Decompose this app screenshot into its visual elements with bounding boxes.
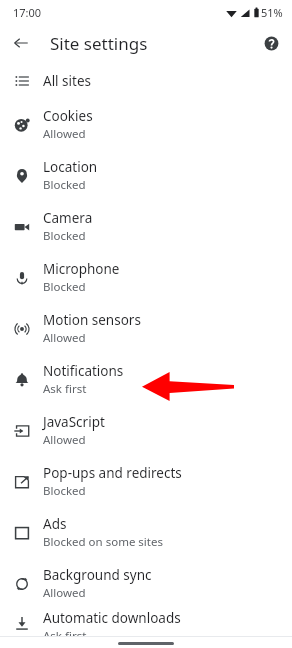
button[interactable]: Location — [0, 150, 292, 201]
button[interactable]: Motion sensors — [0, 303, 292, 354]
staticText: Automatic downloads — [43, 609, 181, 627]
staticText: Site settings — [50, 32, 148, 55]
staticText: Notifications — [43, 362, 124, 380]
staticText: Allowed — [43, 432, 86, 448]
staticText: Blocked — [43, 279, 86, 295]
staticText: Allowed — [43, 585, 86, 601]
staticText: Cookies — [43, 107, 93, 125]
button[interactable]: Back — [7, 29, 35, 57]
button[interactable]: Cookies — [0, 99, 292, 150]
staticText: Motion sensors — [43, 311, 141, 329]
staticText: 17:00 — [13, 5, 42, 20]
staticText: Allowed — [43, 330, 86, 346]
staticText: Ads — [43, 515, 67, 533]
staticText: Blocked — [43, 228, 86, 244]
button[interactable]: Background sync — [0, 558, 292, 609]
button[interactable]: All sites — [0, 62, 292, 99]
staticText: Ask first — [43, 628, 87, 636]
button[interactable]: Notifications — [0, 354, 292, 405]
staticText: Background sync — [43, 566, 152, 584]
staticText: Camera — [43, 209, 93, 227]
staticText: JavaScript — [43, 413, 105, 431]
staticText: Microphone — [43, 260, 120, 278]
button[interactable]: Microphone — [0, 252, 292, 303]
staticText: Blocked — [43, 483, 86, 499]
button[interactable]: JavaScript — [0, 405, 292, 456]
button[interactable]: Help — [258, 30, 284, 56]
staticText: Ask first — [43, 381, 87, 397]
staticText: Allowed — [43, 126, 86, 142]
button[interactable]: Camera — [0, 201, 292, 252]
staticText: Blocked on some sites — [43, 534, 163, 550]
button[interactable]: Ads — [0, 507, 292, 558]
button[interactable]: Pop-ups and redirects — [0, 456, 292, 507]
staticText: Location — [43, 158, 98, 176]
staticText: 51% — [261, 5, 283, 20]
staticText: Pop-ups and redirects — [43, 464, 182, 482]
staticText: Blocked — [43, 177, 86, 193]
button[interactable]: Automatic downloads — [0, 609, 292, 636]
staticText: All sites — [43, 72, 92, 90]
